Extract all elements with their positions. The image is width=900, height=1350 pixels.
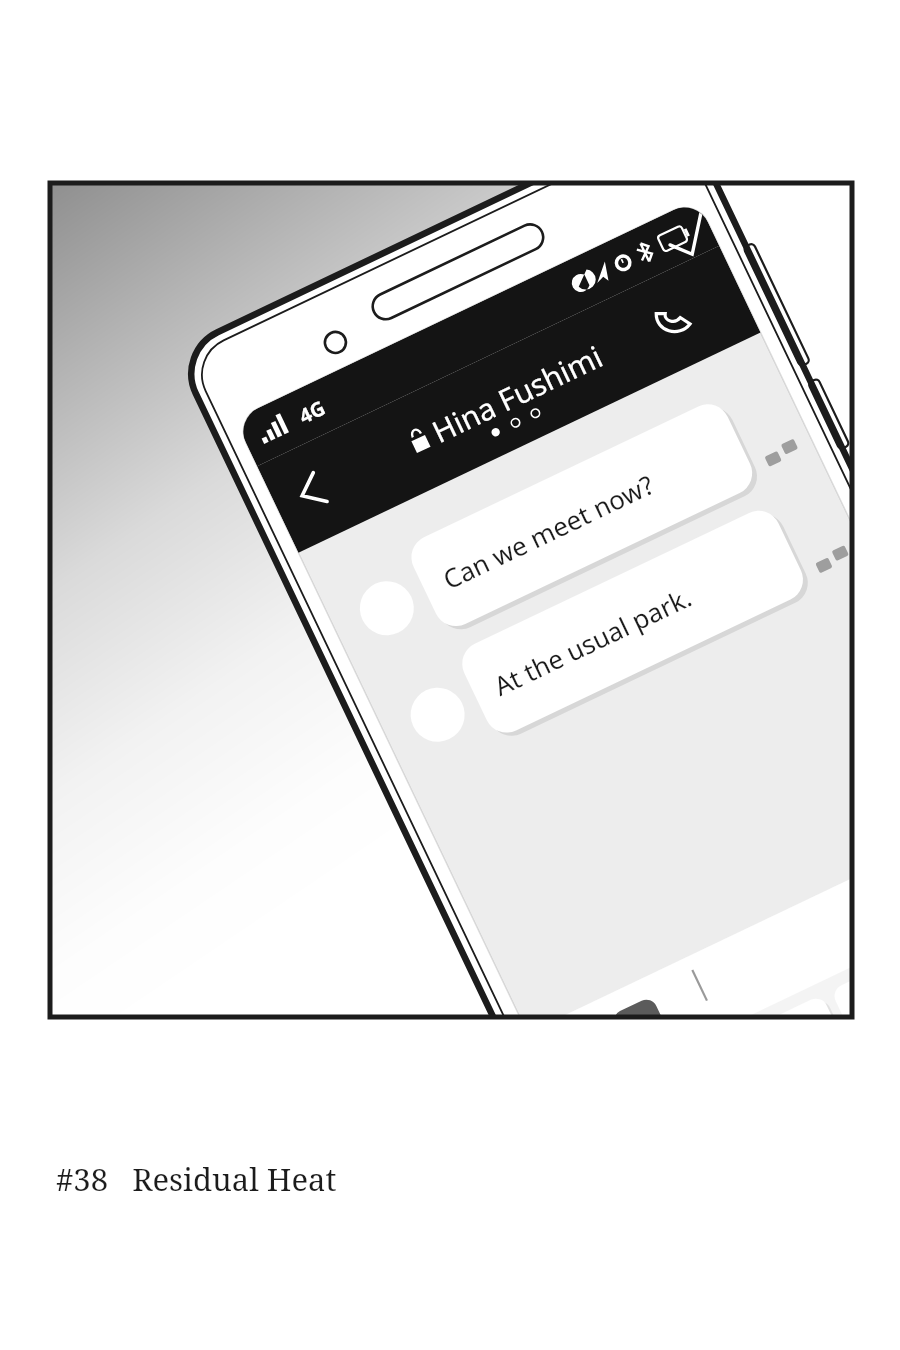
button[interactable]: Manga page — chat screen, #38 Residual H… — [0, 0, 900, 1350]
